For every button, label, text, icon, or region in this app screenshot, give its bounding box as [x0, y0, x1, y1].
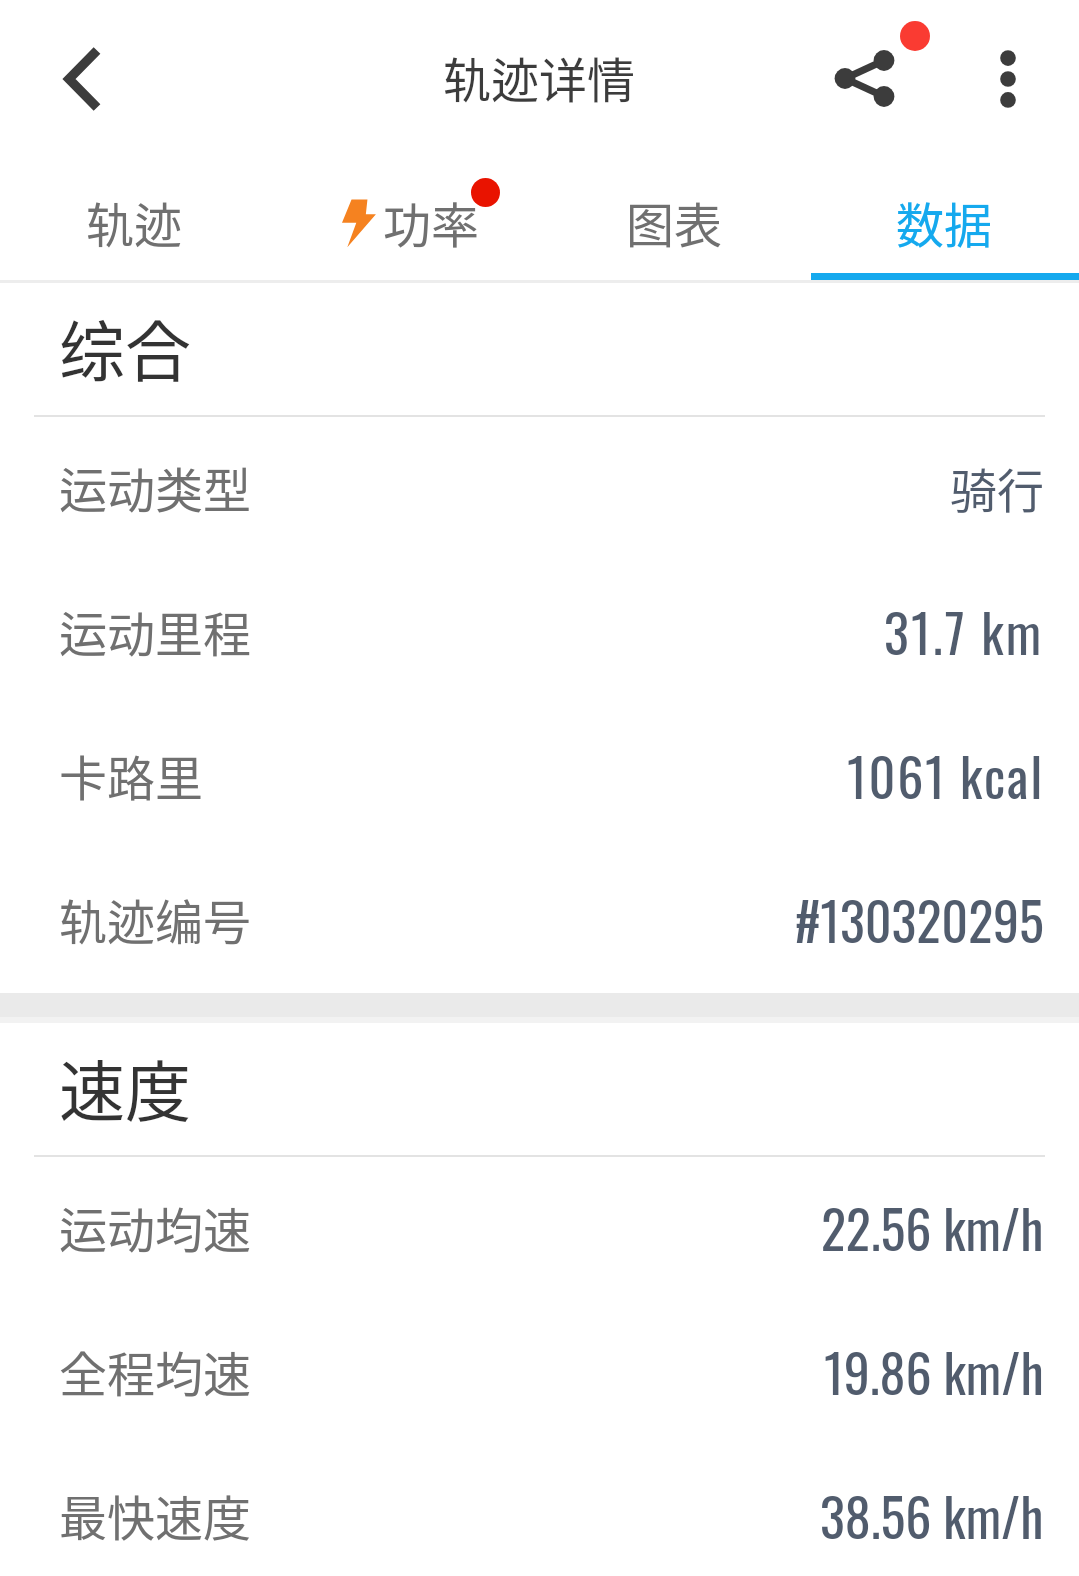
button[interactable]: 功率: [269, 153, 539, 278]
staticText: 38.56 km/h: [820, 1477, 1044, 1554]
button[interactable]: 运动均速: [0, 1157, 1079, 1301]
button[interactable]: Share: [790, 2, 940, 152]
staticText: 运动类型: [59, 452, 252, 522]
button[interactable]: 数据: [809, 153, 1079, 278]
staticText: 轨迹编号: [59, 884, 252, 954]
staticText: 轨迹详情: [443, 42, 636, 112]
staticText: #130320295: [795, 881, 1044, 958]
button[interactable]: 全程均速: [0, 1301, 1079, 1445]
staticText: 全程均速: [59, 1336, 252, 1406]
staticText: 轨迹: [86, 187, 183, 257]
button[interactable]: 轨迹: [0, 153, 269, 278]
button[interactable]: 轨迹编号: [0, 849, 1079, 993]
staticText: 19.86 km/h: [824, 1333, 1044, 1410]
button[interactable]: 最快速度: [0, 1445, 1079, 1576]
staticText: 功率: [383, 187, 480, 257]
button[interactable]: More options: [937, 0, 1079, 153]
staticText: 数据: [896, 187, 993, 257]
staticText: 1061 kcal: [847, 737, 1044, 814]
staticText: 骑行: [950, 453, 1044, 521]
staticText: 图表: [626, 187, 723, 257]
staticText: 速度: [59, 1039, 191, 1135]
staticText: 综合: [59, 299, 191, 395]
button[interactable]: 卡路里: [0, 705, 1079, 849]
staticText: 22.56 km/h: [821, 1189, 1044, 1266]
button[interactable]: 图表: [539, 153, 809, 278]
staticText: 31.7 km: [884, 593, 1044, 670]
staticText: 最快速度: [59, 1480, 252, 1550]
staticText: 运动里程: [59, 596, 252, 666]
button[interactable]: 运动类型: [0, 417, 1079, 561]
staticText: 卡路里: [59, 740, 204, 810]
staticText: 运动均速: [59, 1192, 252, 1262]
button[interactable]: Back: [0, 0, 160, 153]
button[interactable]: 运动里程: [0, 561, 1079, 705]
